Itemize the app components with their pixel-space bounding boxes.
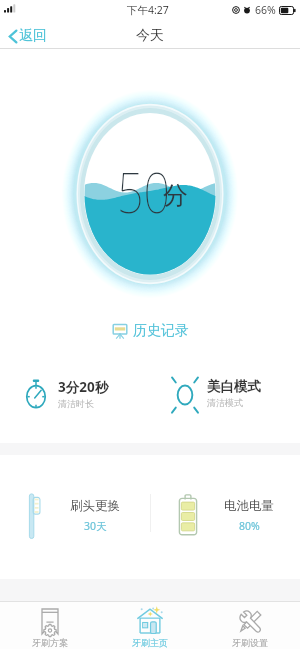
button[interactable]: 3分20秒 <box>0 370 150 416</box>
staticText: 3分20秒 <box>58 378 109 396</box>
button[interactable]: 牙刷设置 <box>200 601 300 649</box>
staticText: 刷头更换 <box>70 498 120 514</box>
button[interactable]: 历史记录 <box>106 319 195 343</box>
button[interactable]: 返回 <box>0 23 59 49</box>
staticText: 清洁模式 <box>207 397 243 408</box>
staticText: 清洁时长 <box>58 398 94 409</box>
button[interactable]: 刷头更换 <box>0 488 150 542</box>
staticText: 30天 <box>84 519 107 533</box>
staticText: 下午4:27 <box>127 3 169 17</box>
staticText: 80% <box>239 519 260 533</box>
staticText: 历史记录 <box>133 322 189 340</box>
staticText: 牙刷方案 <box>32 637 68 648</box>
button[interactable]: 牙刷方案 <box>0 601 100 649</box>
staticText: 牙刷主页 <box>132 637 168 648</box>
staticText: 返回 <box>19 27 47 45</box>
staticText: 今天 <box>136 27 164 45</box>
staticText: 牙刷设置 <box>232 637 268 648</box>
staticText: 美白模式 <box>207 378 261 395</box>
staticText: 50 <box>117 153 170 229</box>
button[interactable]: 美白模式 <box>150 370 300 416</box>
staticText: 分 <box>163 180 188 211</box>
button[interactable]: 电池电量 <box>150 488 300 542</box>
staticText: 电池电量 <box>224 498 274 514</box>
button[interactable]: 牙刷主页 <box>100 601 200 649</box>
staticText: 66% <box>255 3 276 17</box>
